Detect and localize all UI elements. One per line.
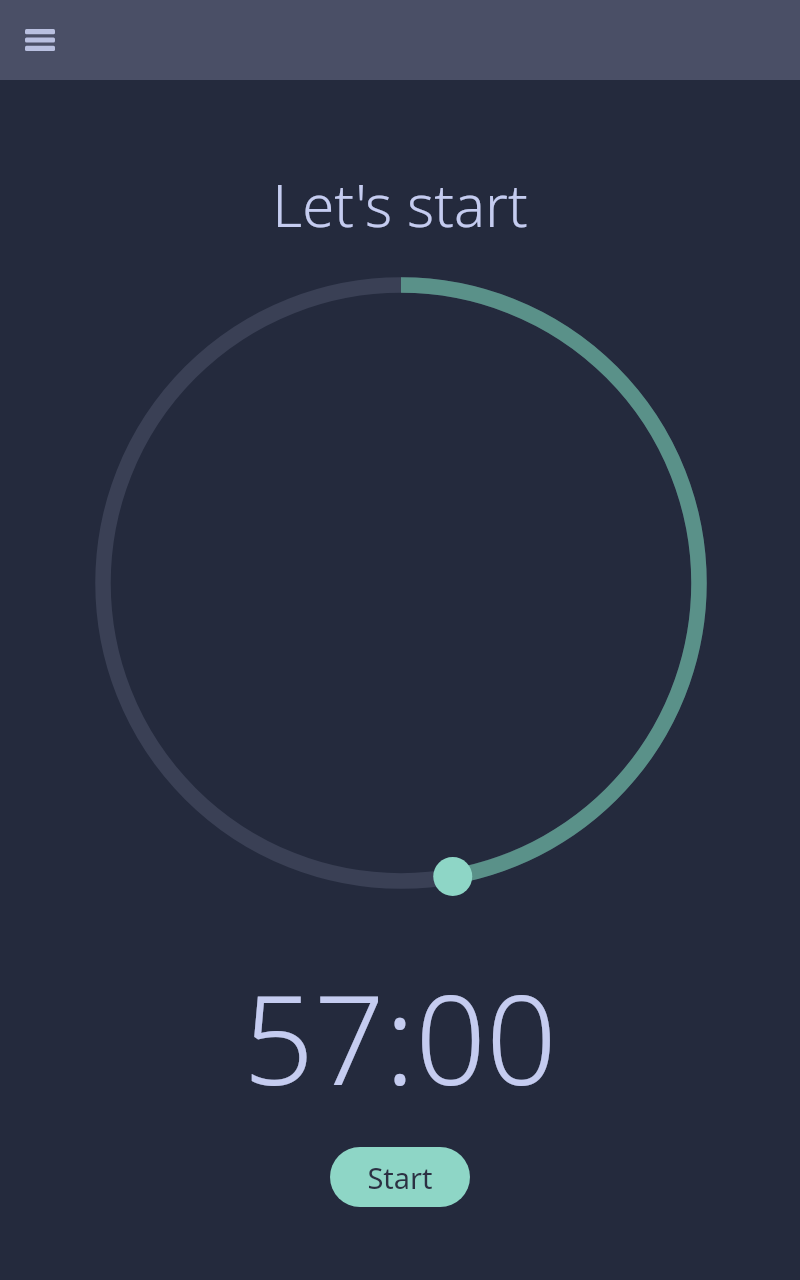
button[interactable]: Start xyxy=(330,1147,470,1207)
staticText: Start xyxy=(367,1158,433,1197)
button[interactable]: Open navigation menu xyxy=(14,20,66,60)
staticText: Let's start xyxy=(0,165,800,244)
staticText: 57:00 xyxy=(243,952,557,1121)
